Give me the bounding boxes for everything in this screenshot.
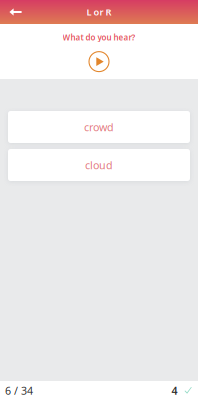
staticText: 4 [171, 383, 177, 398]
button[interactable]: Back [9, 0, 37, 24]
staticText: cloud [85, 158, 113, 172]
staticText: crowd [84, 120, 114, 134]
button[interactable]: Play audio [86, 49, 112, 75]
staticText: L or R [86, 6, 111, 18]
button[interactable]: crowd [8, 111, 190, 143]
staticText: What do you hear? [62, 32, 135, 43]
staticText: 6 / 34 [5, 383, 33, 398]
button[interactable]: cloud [8, 149, 190, 181]
